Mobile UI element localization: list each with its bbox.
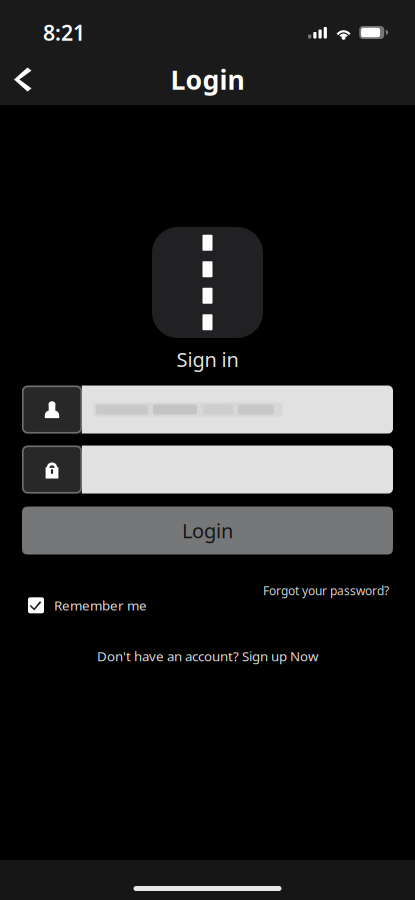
button[interactable]: Forgot your password? (263, 583, 389, 598)
staticText: Login (170, 62, 244, 97)
button[interactable]: Login (22, 507, 393, 555)
staticText: Login (182, 517, 233, 544)
staticText: Sign in (176, 346, 238, 373)
button[interactable]: Don't have an account? Sign up Now (97, 647, 318, 665)
staticText: Forgot your password? (263, 583, 389, 598)
button[interactable] (22, 446, 393, 494)
staticText: 8:21 (43, 18, 85, 47)
staticText: Don't have an account? Sign up Now (97, 647, 318, 665)
button[interactable] (22, 386, 393, 434)
button[interactable]: Remember me (28, 596, 147, 614)
button[interactable]: Back (0, 55, 44, 103)
staticText: Remember me (54, 596, 147, 614)
